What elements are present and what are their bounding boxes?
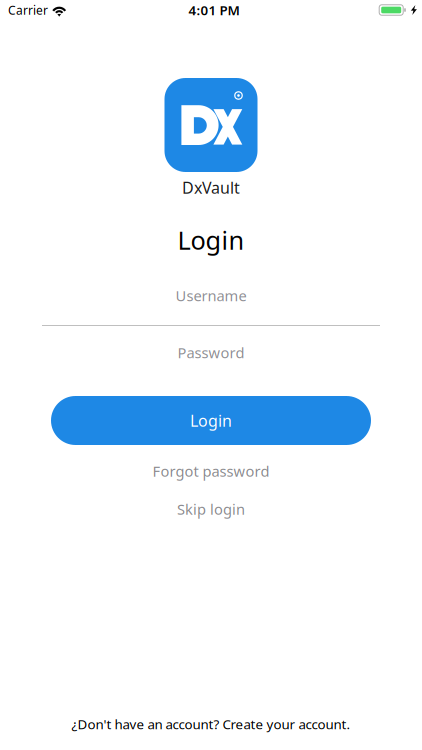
staticText: Skip login: [177, 499, 245, 519]
button[interactable]: Skip login: [177, 501, 245, 517]
staticText: Forgot password: [152, 461, 269, 481]
staticText: DxVault: [182, 177, 240, 198]
button[interactable]: Login: [51, 396, 371, 445]
button[interactable]: ¿Don't have an account? Create your acco…: [71, 717, 350, 731]
button[interactable]: Forgot password: [152, 463, 269, 479]
staticText: Username: [175, 286, 246, 305]
staticText: ¿Don't have an account? Create your acco…: [71, 715, 350, 733]
staticText: Login: [177, 223, 244, 257]
staticText: Password: [177, 343, 244, 362]
staticText: Carrier: [8, 2, 48, 18]
staticText: 4:01 PM: [188, 1, 239, 19]
staticText: Login: [190, 410, 232, 431]
